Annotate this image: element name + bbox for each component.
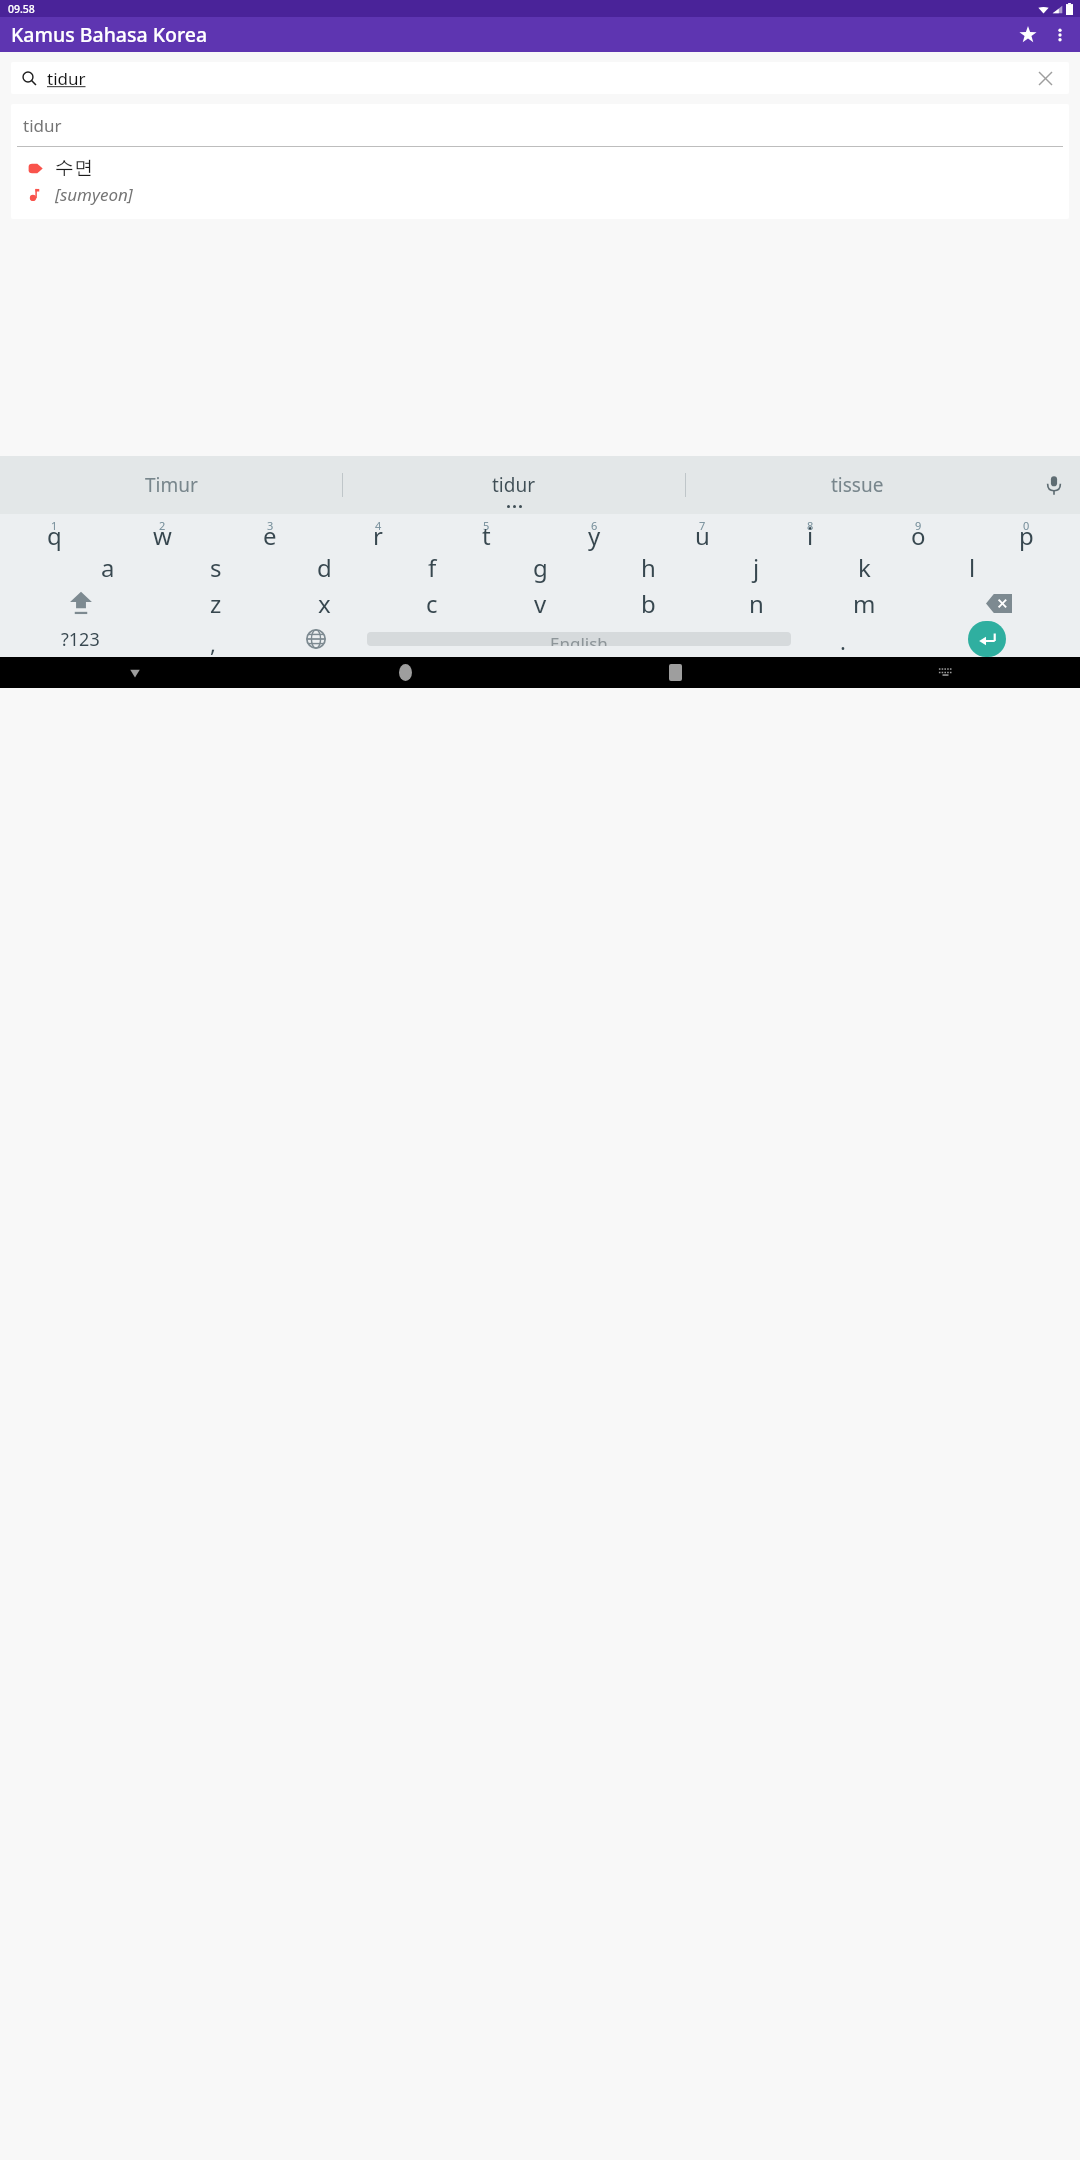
button[interactable]: Change language bbox=[264, 621, 367, 657]
button[interactable]: g bbox=[486, 549, 594, 585]
button[interactable]: tidur bbox=[11, 62, 1069, 94]
button[interactable]: 8 bbox=[756, 514, 864, 549]
button[interactable]: Timur bbox=[0, 456, 342, 514]
staticText: 수면 bbox=[55, 156, 93, 180]
staticText: n bbox=[749, 587, 764, 620]
staticText: w bbox=[153, 519, 172, 552]
staticText: r bbox=[373, 519, 383, 552]
button[interactable]: b bbox=[594, 585, 702, 621]
button[interactable]: f bbox=[378, 549, 486, 585]
staticText: Timur bbox=[145, 472, 198, 498]
staticText: u bbox=[695, 519, 710, 552]
staticText: 09.58 bbox=[8, 2, 35, 16]
button[interactable]: tissue bbox=[686, 456, 1028, 514]
staticText: z bbox=[210, 587, 222, 620]
button[interactable]: 6 bbox=[540, 514, 648, 549]
button[interactable]: v bbox=[486, 585, 594, 621]
button[interactable]: 5 bbox=[432, 514, 540, 549]
button[interactable]: s bbox=[162, 549, 270, 585]
button[interactable]: Switch keyboard bbox=[810, 657, 1080, 688]
button[interactable]: tidur bbox=[343, 456, 685, 514]
staticText: v bbox=[534, 587, 547, 620]
staticText: s bbox=[210, 551, 222, 584]
button[interactable]: d bbox=[270, 549, 378, 585]
staticText: 7 bbox=[699, 518, 706, 533]
staticText: h bbox=[641, 551, 656, 584]
staticText: e bbox=[263, 519, 277, 552]
staticText: m bbox=[853, 587, 876, 620]
staticText: y bbox=[588, 519, 601, 552]
staticText: 8 bbox=[807, 518, 814, 533]
staticText: Kamus Bahasa Korea bbox=[11, 21, 208, 48]
staticText: i bbox=[807, 519, 814, 552]
button[interactable]: . bbox=[791, 621, 894, 657]
button[interactable]: Clear bbox=[1032, 65, 1058, 91]
button[interactable]: Voice input bbox=[1028, 456, 1080, 514]
staticText: tidur bbox=[47, 67, 86, 90]
button[interactable]: 1 bbox=[0, 514, 108, 549]
button[interactable]: k bbox=[810, 549, 918, 585]
button[interactable]: l bbox=[918, 549, 1026, 585]
staticText: . bbox=[840, 626, 846, 656]
staticText: p bbox=[1019, 519, 1034, 552]
button[interactable]: n bbox=[702, 585, 810, 621]
staticText: tissue bbox=[831, 472, 884, 498]
staticText: 2 bbox=[159, 518, 166, 533]
staticText: 1 bbox=[51, 518, 58, 533]
staticText: English bbox=[550, 632, 608, 646]
staticText: tidur bbox=[492, 472, 536, 498]
staticText: f bbox=[428, 551, 437, 584]
staticText: g bbox=[533, 551, 548, 584]
staticText: 6 bbox=[591, 518, 598, 533]
staticText: 4 bbox=[375, 518, 382, 533]
button[interactable]: Favorites bbox=[1010, 17, 1045, 52]
button[interactable]: 4 bbox=[324, 514, 432, 549]
button[interactable]: z bbox=[162, 585, 270, 621]
staticText: k bbox=[858, 551, 871, 584]
staticText: j bbox=[753, 551, 760, 584]
staticText: 9 bbox=[915, 518, 922, 533]
button[interactable]: 3 bbox=[216, 514, 324, 549]
staticText: 0 bbox=[1023, 518, 1030, 533]
staticText: d bbox=[317, 551, 332, 584]
button[interactable]: Hide keyboard bbox=[0, 657, 270, 688]
button[interactable]: English bbox=[367, 632, 791, 646]
button[interactable]: j bbox=[702, 549, 810, 585]
button[interactable]: c bbox=[378, 585, 486, 621]
staticText: o bbox=[911, 519, 926, 552]
button[interactable]: ?123 bbox=[0, 621, 161, 657]
button[interactable]: x bbox=[270, 585, 378, 621]
staticText: ?123 bbox=[61, 627, 100, 652]
button[interactable]: 9 bbox=[864, 514, 972, 549]
button[interactable]: More options bbox=[1045, 17, 1074, 52]
staticText: [sumyeon] bbox=[55, 183, 133, 206]
button[interactable]: tidur bbox=[11, 104, 1069, 219]
staticText: 3 bbox=[267, 518, 274, 533]
button[interactable]: Recent apps bbox=[540, 657, 810, 688]
button[interactable]: 2 bbox=[108, 514, 216, 549]
button[interactable]: Home bbox=[270, 657, 540, 688]
button[interactable]: Backspace bbox=[918, 585, 1080, 621]
staticText: l bbox=[969, 551, 976, 584]
button[interactable]: a bbox=[54, 549, 162, 585]
button[interactable]: h bbox=[594, 549, 702, 585]
button[interactable]: Enter bbox=[894, 621, 1080, 657]
staticText: b bbox=[641, 587, 656, 620]
button[interactable]: 0 bbox=[972, 514, 1080, 549]
staticText: a bbox=[101, 551, 115, 584]
staticText: q bbox=[47, 519, 62, 552]
staticText: t bbox=[482, 519, 491, 552]
staticText: 5 bbox=[483, 518, 490, 533]
staticText: tidur bbox=[23, 114, 62, 137]
button[interactable]: Shift bbox=[0, 585, 162, 621]
staticText: , bbox=[210, 628, 216, 658]
button[interactable]: m bbox=[810, 585, 918, 621]
staticText: c bbox=[426, 587, 438, 620]
staticText: x bbox=[318, 587, 331, 620]
button[interactable]: 7 bbox=[648, 514, 756, 549]
button[interactable]: , bbox=[161, 621, 264, 657]
